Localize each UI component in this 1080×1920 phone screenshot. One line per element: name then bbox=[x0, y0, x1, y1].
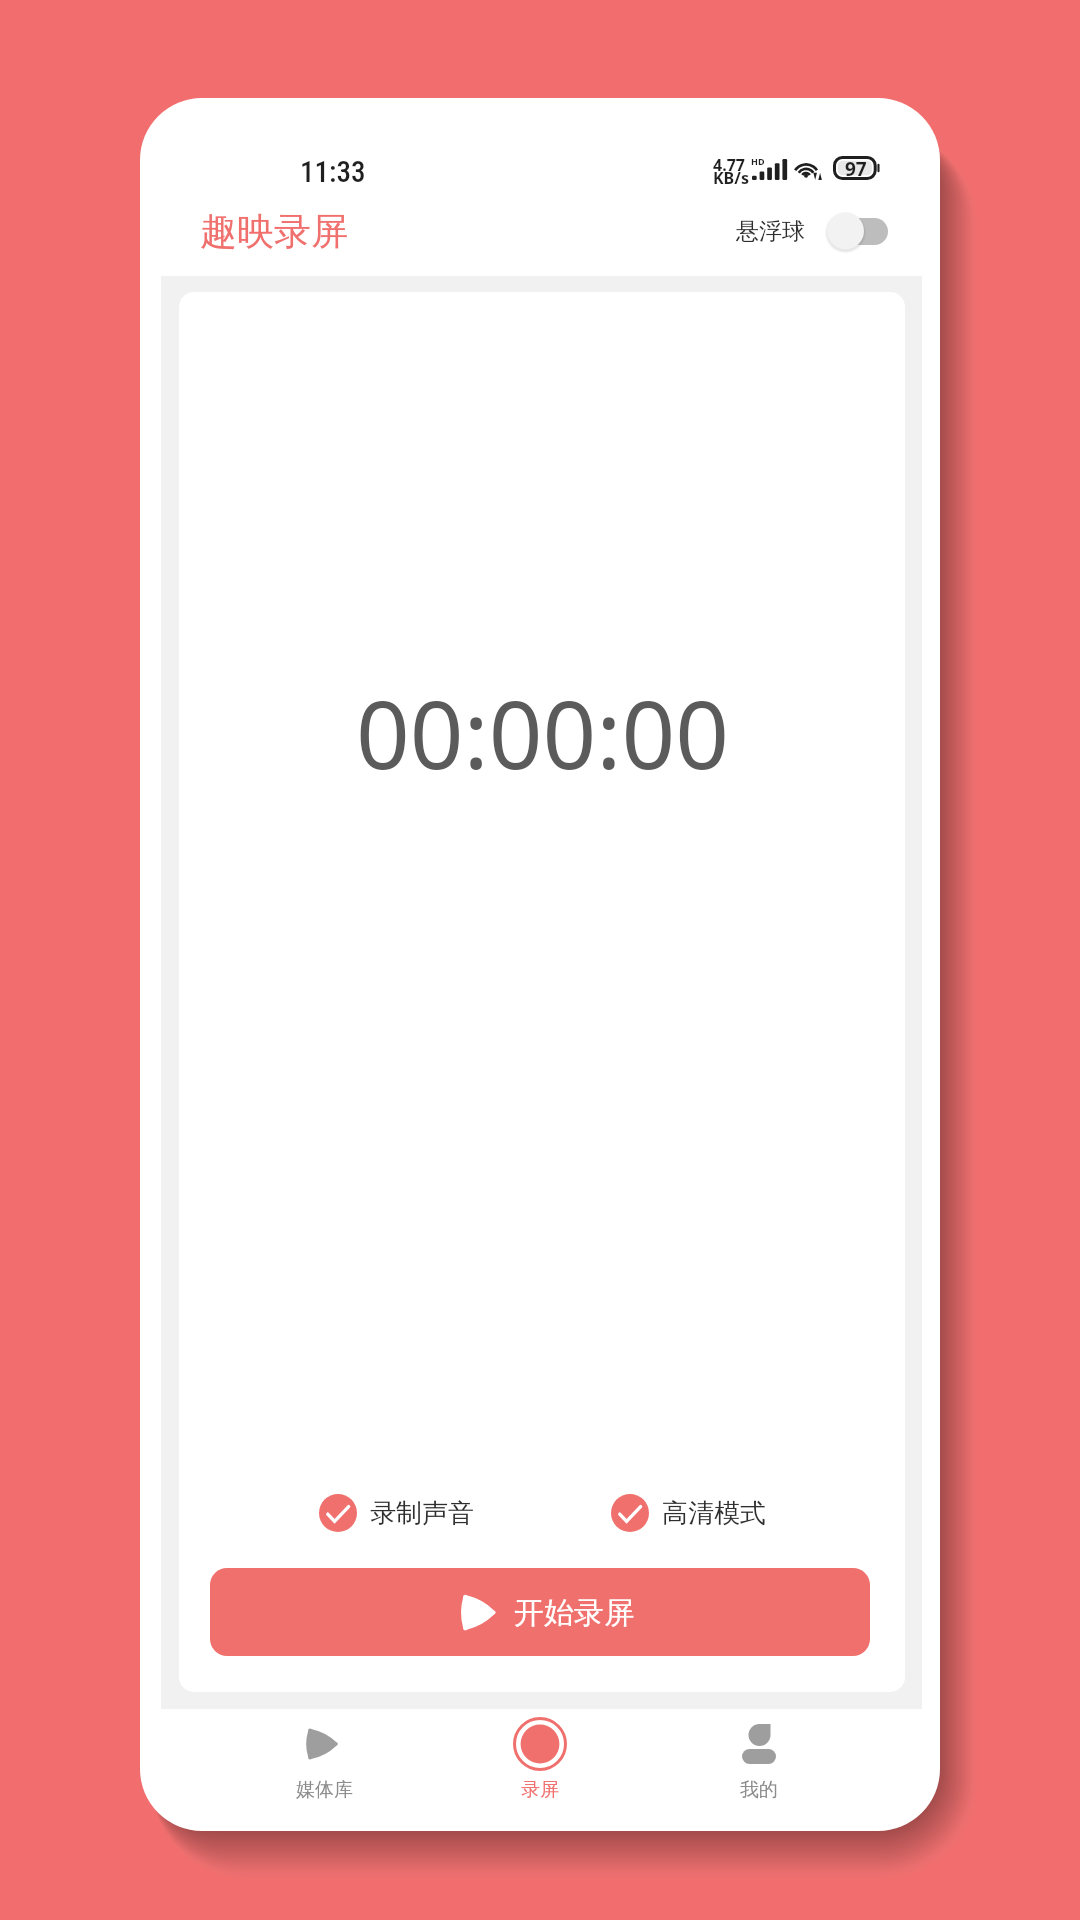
staticText: 趣映录屏 bbox=[200, 208, 348, 255]
staticText: 11:33 bbox=[300, 155, 366, 189]
staticText: HD bbox=[751, 155, 765, 167]
staticText: 00:00:00 bbox=[356, 669, 729, 797]
button[interactable]: 悬浮球 bbox=[730, 205, 895, 257]
staticText: KB/s bbox=[713, 167, 749, 189]
button[interactable]: Record screen bbox=[440, 1709, 640, 1831]
button[interactable]: Toggle floating ball bbox=[827, 211, 889, 251]
staticText: 录屏 bbox=[521, 1778, 559, 1802]
staticText: 高清模式 bbox=[662, 1497, 766, 1530]
staticText: 97 bbox=[845, 156, 867, 180]
button[interactable]: 开始录屏 bbox=[210, 1568, 870, 1656]
staticText: 录制声音 bbox=[370, 1497, 474, 1530]
button[interactable]: 录制声音 bbox=[315, 1490, 478, 1536]
button[interactable]: 高清模式 bbox=[607, 1490, 770, 1536]
button[interactable]: Profile bbox=[659, 1709, 859, 1831]
staticText: 悬浮球 bbox=[736, 217, 805, 246]
staticText: 媒体库 bbox=[296, 1778, 353, 1802]
staticText: 4.77 bbox=[713, 154, 745, 176]
staticText: 我的 bbox=[740, 1778, 778, 1802]
button[interactable]: Media library bbox=[224, 1709, 424, 1831]
staticText: 开始录屏 bbox=[514, 1594, 634, 1632]
